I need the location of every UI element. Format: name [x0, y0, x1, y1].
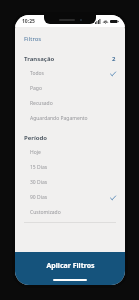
button[interactable]: 90 Dias — [15, 190, 125, 205]
staticText: Todos — [30, 70, 44, 77]
staticText: Customizado — [30, 209, 61, 216]
staticText: Filtros — [24, 35, 42, 43]
staticText: Transação — [24, 55, 55, 63]
button[interactable]: Aguardando Pagamento — [15, 111, 125, 126]
staticText: Aplicar Filtros — [46, 261, 95, 271]
staticText: Período — [24, 134, 48, 142]
staticText: 2 — [112, 55, 116, 63]
button[interactable]: Aplicar Filtros — [15, 252, 125, 285]
staticText: 90 Dias — [30, 194, 48, 201]
button[interactable]: Hoje — [15, 145, 125, 160]
button[interactable]: Pago — [15, 81, 125, 96]
staticText: Aguardando Pagamento — [30, 115, 88, 122]
staticText: Recusado — [30, 100, 53, 107]
button[interactable]: 15 Dias — [15, 160, 125, 175]
button[interactable]: 30 Dias — [15, 175, 125, 190]
staticText: Pago — [30, 85, 42, 92]
staticText: 10:25 — [22, 18, 35, 25]
button[interactable]: Recusado — [15, 96, 125, 111]
staticText: 30 Dias — [30, 179, 48, 186]
staticText: 15 Dias — [30, 164, 48, 171]
staticText: Hoje — [30, 149, 41, 156]
button[interactable]: Customizado — [15, 205, 125, 220]
button[interactable]: Todos — [15, 66, 125, 81]
